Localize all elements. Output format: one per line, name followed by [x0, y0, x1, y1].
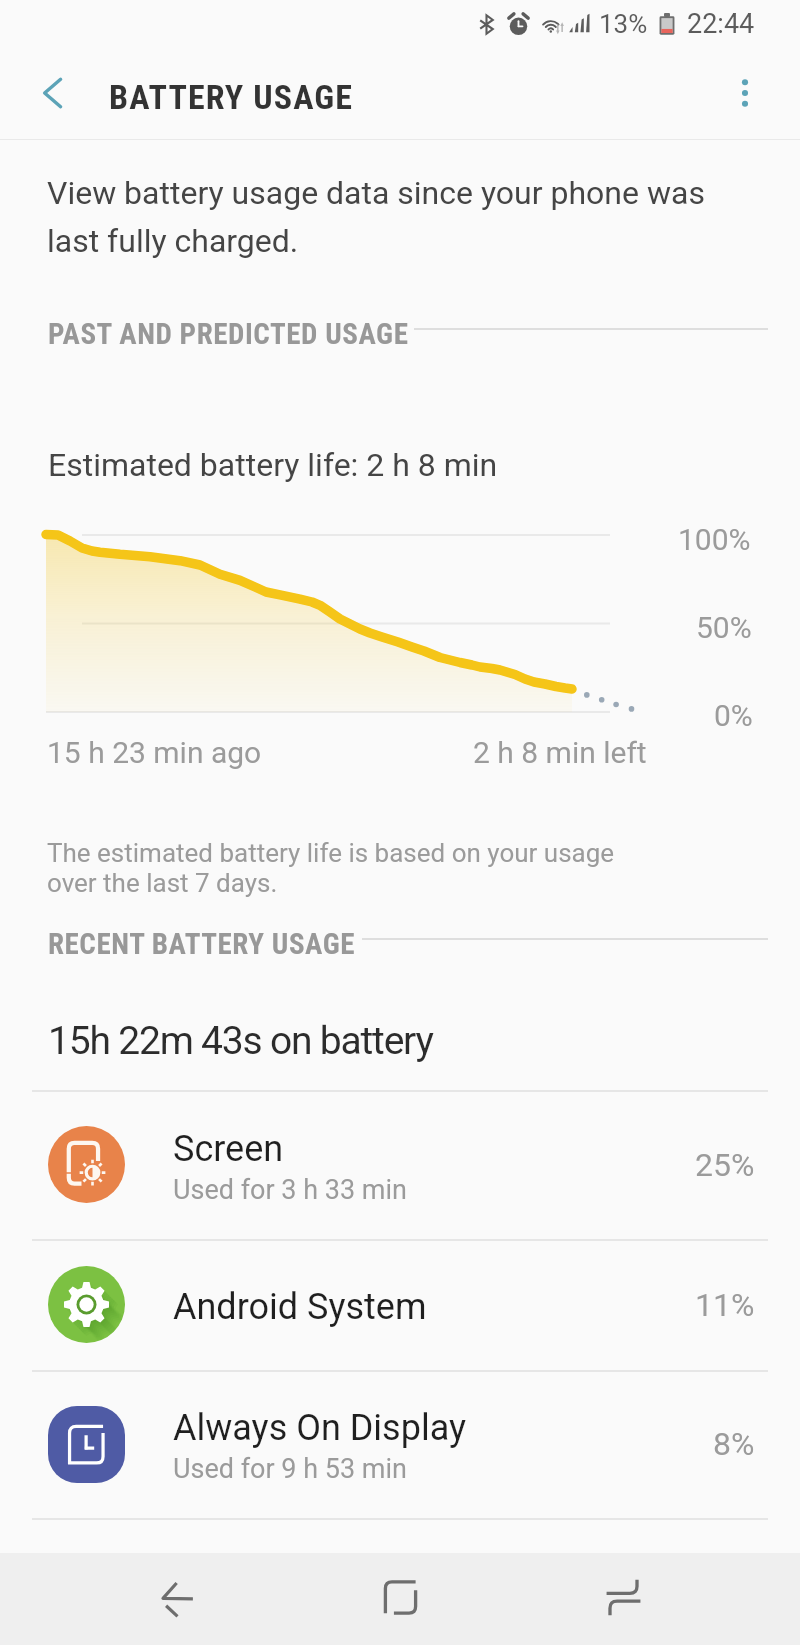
- staticText: 11%: [695, 1286, 755, 1324]
- button[interactable]: Always On Display: [0, 1370, 800, 1518]
- button[interactable]: Navigate up: [26, 66, 80, 120]
- staticText: Android System: [173, 1286, 427, 1328]
- staticText: 50%: [696, 610, 752, 645]
- staticText: 22:44: [687, 8, 755, 40]
- staticText: 25%: [695, 1146, 755, 1184]
- button[interactable]: More options: [718, 66, 772, 120]
- staticText: BATTERY USAGE: [109, 77, 354, 117]
- button[interactable]: Android System: [0, 1239, 800, 1370]
- button[interactable]: Recent apps: [489, 1553, 757, 1645]
- button[interactable]: Home: [266, 1553, 534, 1645]
- staticText: Estimated battery life: 2 h 8 min: [48, 446, 498, 484]
- staticText: 0%: [714, 698, 753, 733]
- button[interactable]: Screen: [0, 1090, 800, 1239]
- button[interactable]: Back: [43, 1553, 311, 1645]
- staticText: Used for 3 h 33 min: [173, 1174, 407, 1206]
- staticText: 15h 22m 43s on battery: [48, 1018, 433, 1064]
- staticText: 8%: [713, 1425, 755, 1463]
- staticText: 2 h 8 min left: [473, 735, 647, 770]
- staticText: The estimated battery life is based on y…: [47, 838, 647, 898]
- staticText: 13%: [599, 9, 648, 39]
- staticText: Used for 9 h 53 min: [173, 1453, 407, 1485]
- staticText: RECENT BATTERY USAGE: [48, 927, 355, 961]
- staticText: 15 h 23 min ago: [47, 735, 262, 770]
- staticText: Screen: [173, 1128, 284, 1170]
- staticText: View battery usage data since your phone…: [47, 174, 737, 260]
- staticText: PAST AND PREDICTED USAGE: [48, 317, 409, 351]
- staticText: Always On Display: [173, 1407, 467, 1449]
- staticText: 100%: [678, 522, 751, 557]
